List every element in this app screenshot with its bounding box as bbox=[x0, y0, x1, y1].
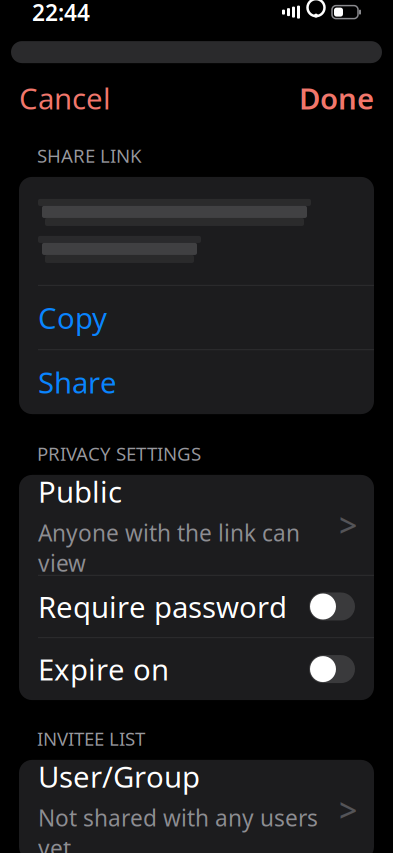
button[interactable]: Done bbox=[285, 69, 374, 128]
staticText: Cancel bbox=[19, 79, 111, 118]
staticText: Public bbox=[38, 472, 122, 511]
staticText: Share bbox=[38, 363, 117, 402]
staticText: > bbox=[339, 504, 357, 546]
button[interactable]: Public bbox=[19, 475, 374, 575]
staticText: INVITEE LIST bbox=[37, 726, 145, 751]
staticText: Done bbox=[299, 79, 374, 118]
staticText: Require password bbox=[38, 587, 287, 626]
staticText: > bbox=[339, 789, 357, 831]
staticText: Expire on bbox=[38, 650, 169, 689]
staticText: User/Group bbox=[38, 757, 200, 796]
staticText: SHARE LINK bbox=[37, 143, 142, 168]
button[interactable]: User/Group bbox=[19, 760, 374, 853]
staticText: Not shared with any users yet bbox=[38, 803, 318, 853]
button[interactable]: Require password bbox=[19, 575, 374, 637]
staticText: Copy bbox=[38, 298, 107, 337]
button[interactable]: Share bbox=[19, 350, 374, 414]
button[interactable]: Expire on bbox=[19, 638, 374, 700]
button[interactable]: Cancel bbox=[19, 69, 125, 128]
button[interactable]: Copy bbox=[19, 285, 374, 349]
staticText: Anyone with the link can view bbox=[38, 518, 300, 578]
staticText: 22:44 bbox=[32, 0, 90, 27]
staticText: PRIVACY SETTINGS bbox=[37, 441, 201, 466]
